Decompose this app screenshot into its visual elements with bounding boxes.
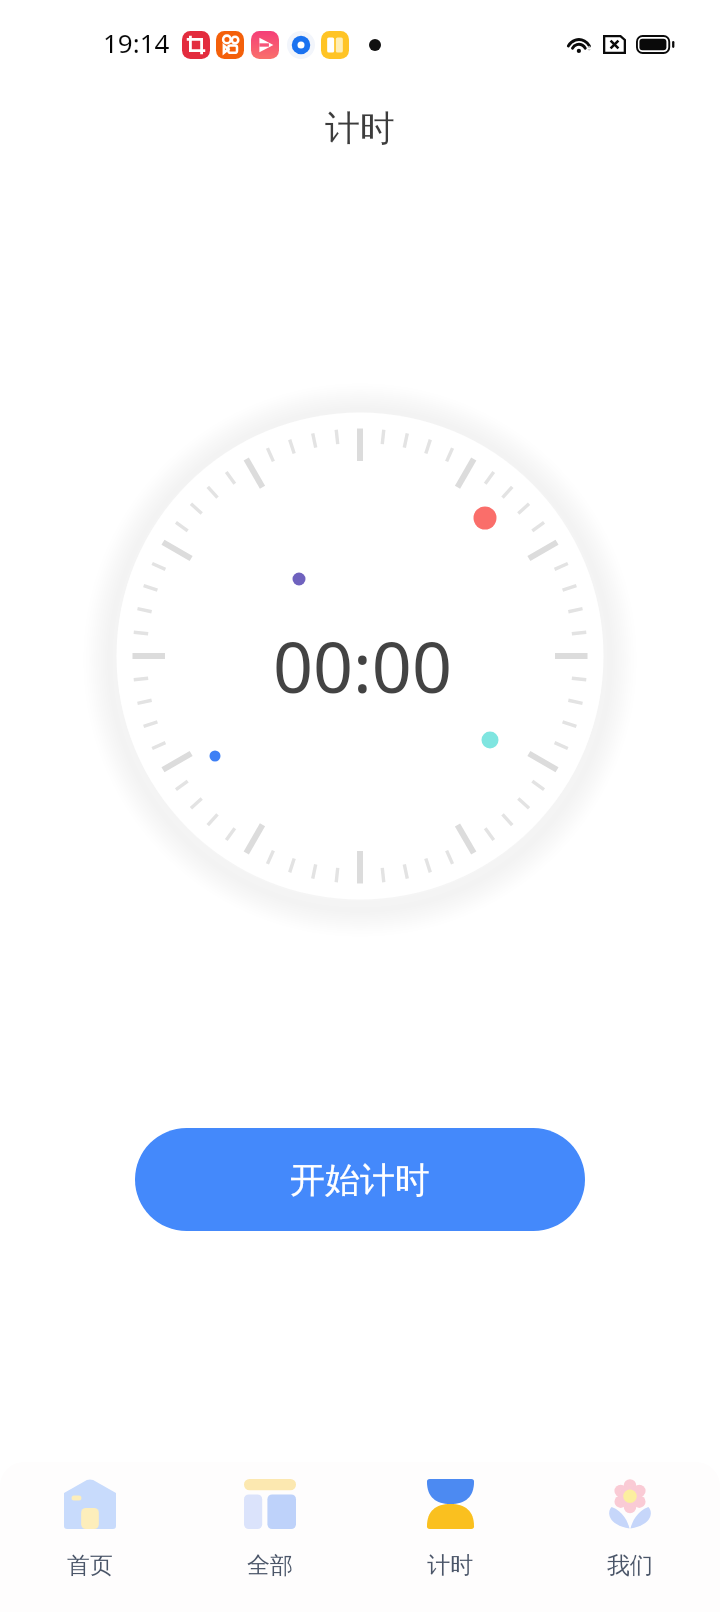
button[interactable]: 计时 xyxy=(360,1462,540,1612)
staticText: 全部 xyxy=(247,1551,293,1580)
button[interactable]: 全部 xyxy=(180,1462,360,1612)
staticText: 首页 xyxy=(67,1551,113,1580)
staticText: 19:14 xyxy=(103,25,170,60)
staticText: 我们 xyxy=(607,1551,653,1580)
button[interactable]: 开始计时 xyxy=(135,1128,585,1231)
other: 计时表盘 xyxy=(100,396,620,916)
staticText: 计时 xyxy=(325,106,395,150)
staticText: 计时 xyxy=(427,1551,473,1580)
button[interactable]: 我们 xyxy=(540,1462,720,1612)
button[interactable]: 首页 xyxy=(0,1462,180,1612)
staticText: 00:00 xyxy=(273,618,452,713)
staticText: 开始计时 xyxy=(290,1158,430,1202)
